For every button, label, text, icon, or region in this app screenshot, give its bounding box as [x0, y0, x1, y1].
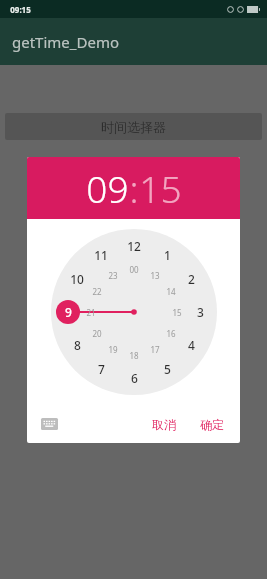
button[interactable]: 15	[139, 163, 182, 213]
staticText: 12	[127, 238, 141, 254]
staticText: :	[129, 163, 139, 213]
button[interactable]: Switch to keyboard input	[36, 413, 62, 435]
staticText: 7	[98, 361, 105, 377]
button[interactable]: 时间选择器	[5, 113, 262, 140]
staticText: 10	[70, 271, 84, 287]
button[interactable]: 21	[80, 301, 102, 323]
staticText: 23	[108, 270, 118, 281]
staticText: 09:15	[10, 4, 31, 15]
staticText: 21	[86, 307, 96, 318]
button[interactable]: 14	[160, 280, 182, 302]
button[interactable]: 10	[66, 268, 88, 290]
staticText: 确定	[200, 417, 224, 432]
button[interactable]: 09	[86, 163, 129, 213]
button[interactable]: 20	[86, 322, 108, 344]
staticText: 20	[92, 328, 102, 339]
button[interactable]: 9	[57, 301, 79, 323]
button[interactable]: 23	[102, 264, 124, 286]
staticText: 时间选择器	[101, 119, 166, 135]
staticText: 4	[188, 337, 195, 353]
button[interactable]: 取消	[144, 412, 184, 437]
button[interactable]: 3	[189, 301, 211, 323]
staticText: 18	[129, 350, 139, 361]
staticText: 22	[92, 286, 102, 297]
button[interactable]: 4	[180, 334, 202, 356]
button[interactable]: 19	[102, 338, 124, 360]
button[interactable]: 5	[156, 358, 178, 380]
button[interactable]: 确定	[192, 412, 232, 437]
staticText: 14	[166, 286, 176, 297]
button[interactable]: 11	[90, 244, 112, 266]
button[interactable]: 6	[123, 367, 145, 389]
button[interactable]: 8	[66, 334, 88, 356]
button[interactable]: 7	[90, 358, 112, 380]
button[interactable]: 22	[86, 280, 108, 302]
staticText: 9	[65, 304, 72, 320]
staticText: 00	[129, 264, 139, 275]
button[interactable]: 17	[144, 338, 166, 360]
button[interactable]: 15	[166, 301, 188, 323]
staticText: 16	[166, 328, 176, 339]
button[interactable]: 13	[144, 264, 166, 286]
staticText: 15	[172, 307, 182, 318]
staticText: 19	[108, 344, 118, 355]
button[interactable]: 2	[180, 268, 202, 290]
staticText: 5	[164, 361, 171, 377]
staticText: 13	[150, 270, 160, 281]
staticText: 6	[131, 370, 138, 386]
button[interactable]: 12	[123, 235, 145, 257]
staticText: 17	[150, 344, 160, 355]
button[interactable]: 1	[156, 244, 178, 266]
button[interactable]: 16	[160, 322, 182, 344]
button[interactable]: 00	[123, 258, 145, 280]
staticText: 1	[164, 247, 171, 263]
staticText: getTime_Demo	[12, 32, 119, 52]
staticText: 11	[94, 247, 108, 263]
staticText: 取消	[152, 417, 176, 432]
staticText: 2	[188, 271, 195, 287]
button[interactable]: 18	[123, 344, 145, 366]
staticText: 3	[197, 304, 204, 320]
staticText: 8	[74, 337, 81, 353]
